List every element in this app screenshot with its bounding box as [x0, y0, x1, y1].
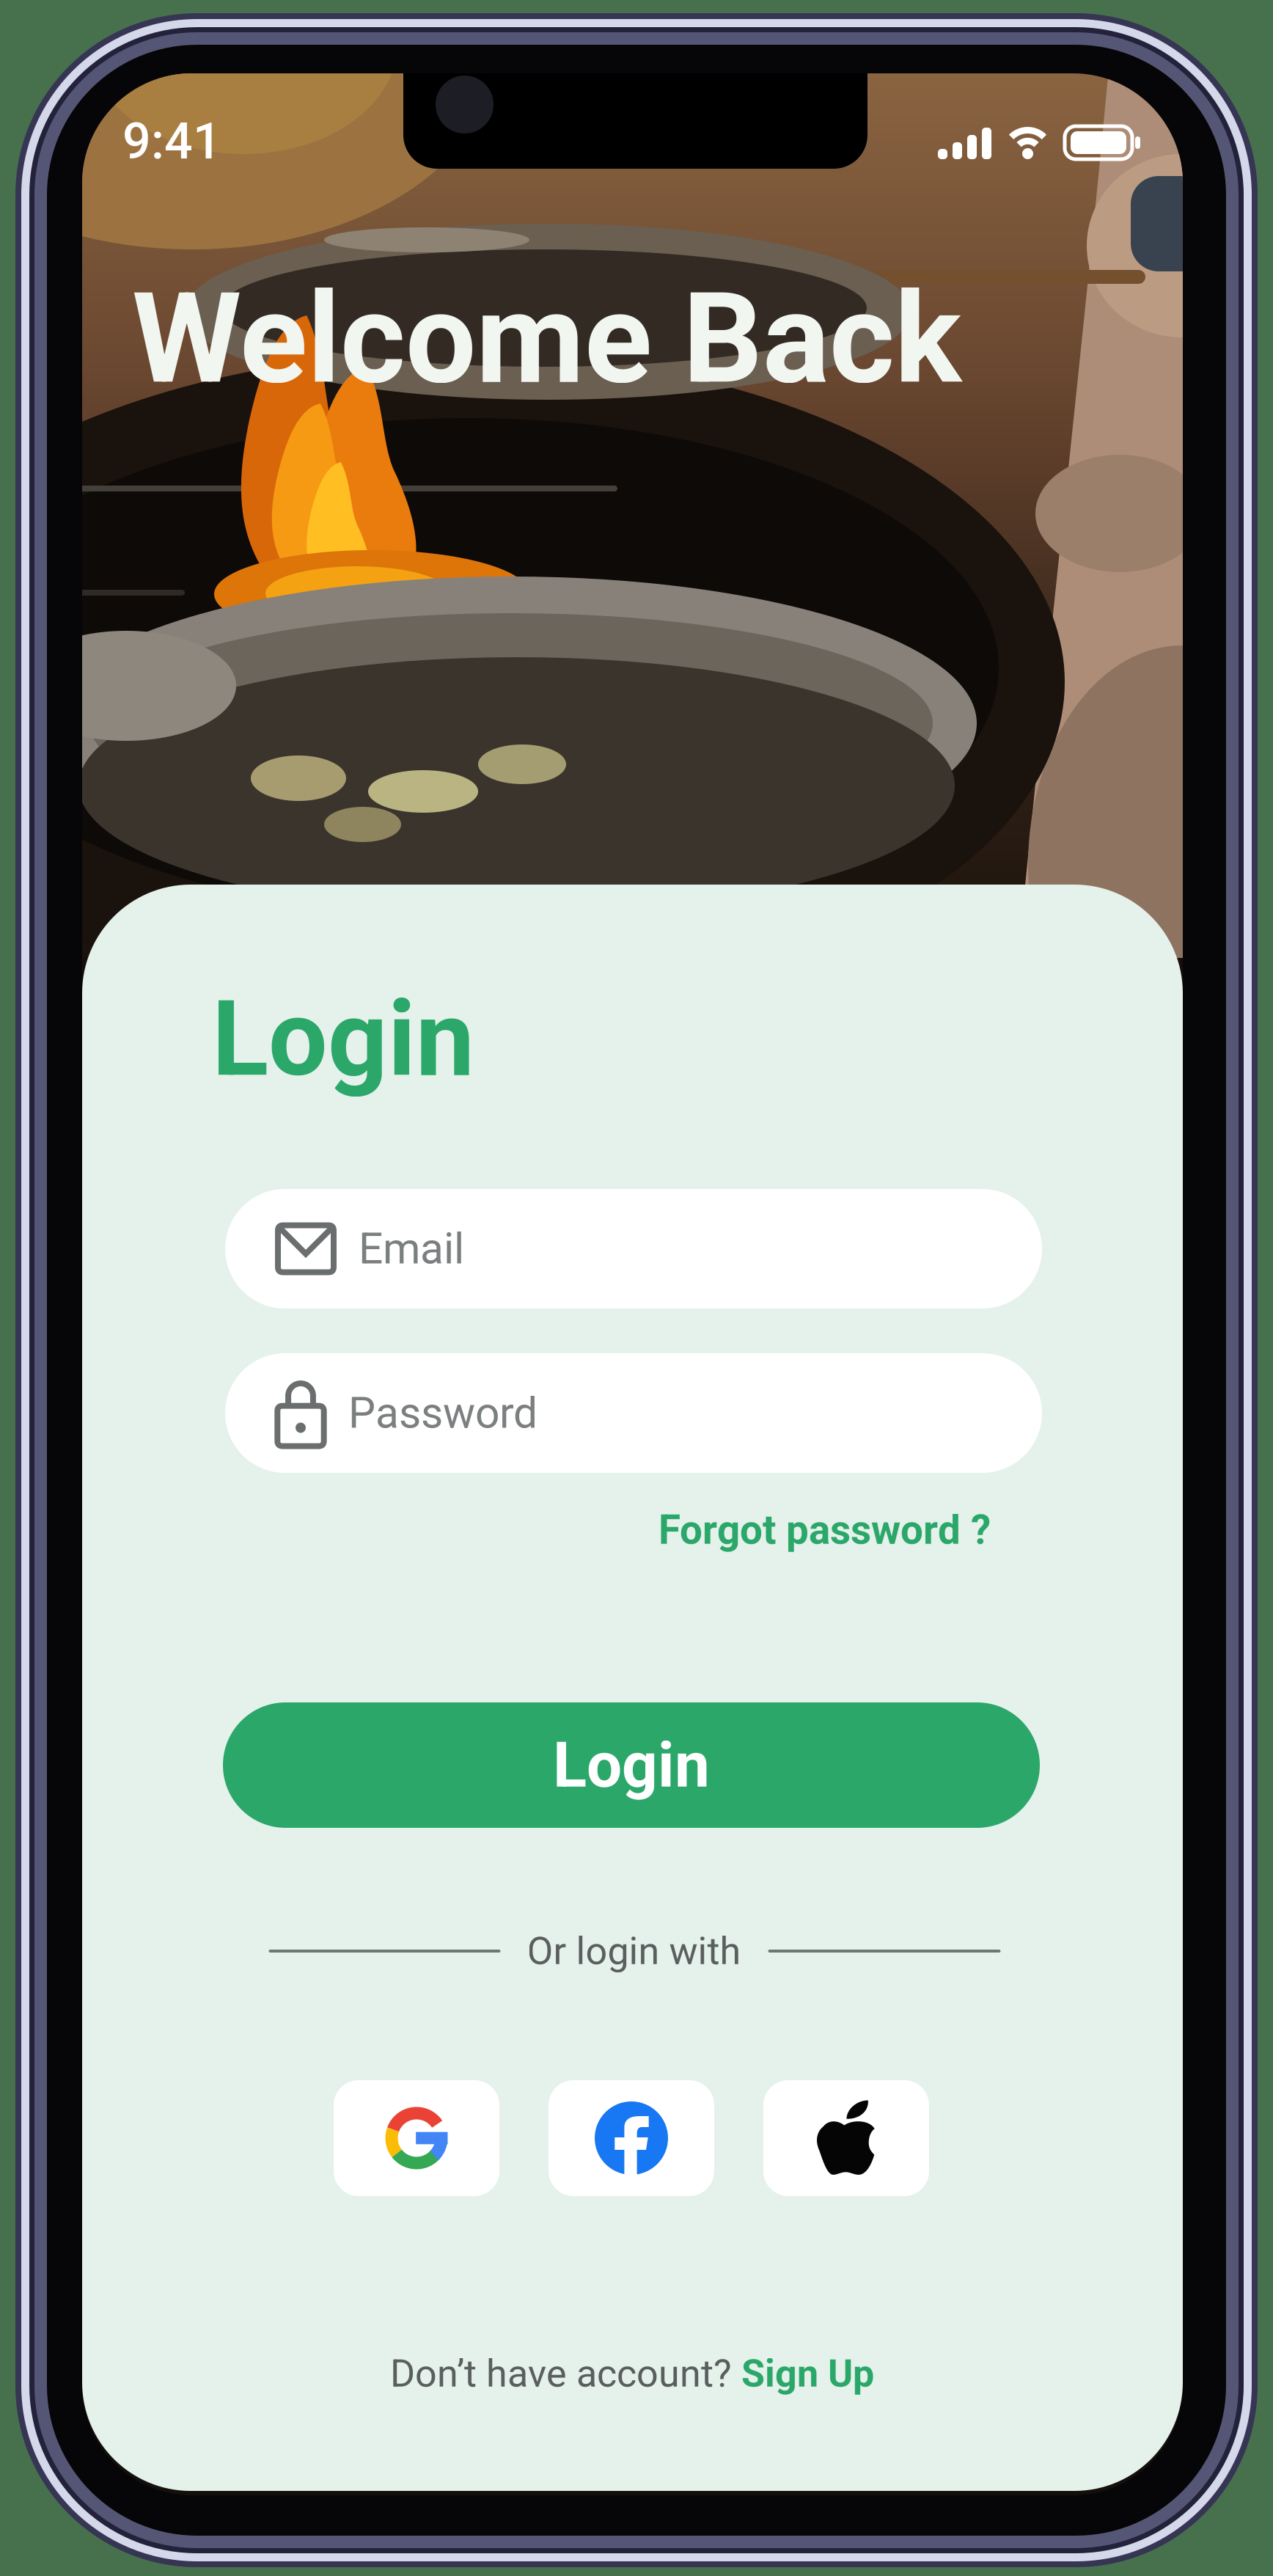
button[interactable]: Email: [225, 1189, 1042, 1309]
staticText: Email: [359, 1224, 464, 1274]
staticText: Password: [348, 1388, 538, 1438]
button[interactable]: Continue with Apple: [763, 2080, 929, 2196]
staticText: Login: [553, 1728, 710, 1802]
button[interactable]: Continue with Google: [334, 2080, 499, 2196]
staticText: Login: [212, 978, 474, 1100]
staticText: 9:41: [122, 112, 221, 171]
button[interactable]: Password: [225, 1353, 1042, 1473]
staticText: Welcome Back: [132, 266, 961, 412]
staticText: Forgot password ?: [658, 1507, 991, 1554]
staticText: Sign Up: [741, 2351, 874, 2396]
button[interactable]: Don’t have account?: [375, 2351, 889, 2396]
staticText: Don’t have account?: [390, 2351, 741, 2396]
staticText: Or login with: [527, 1929, 741, 1973]
button[interactable]: Forgot password ?: [653, 1507, 991, 1554]
button[interactable]: Login: [223, 1702, 1040, 1828]
button[interactable]: Continue with Facebook: [549, 2080, 714, 2196]
